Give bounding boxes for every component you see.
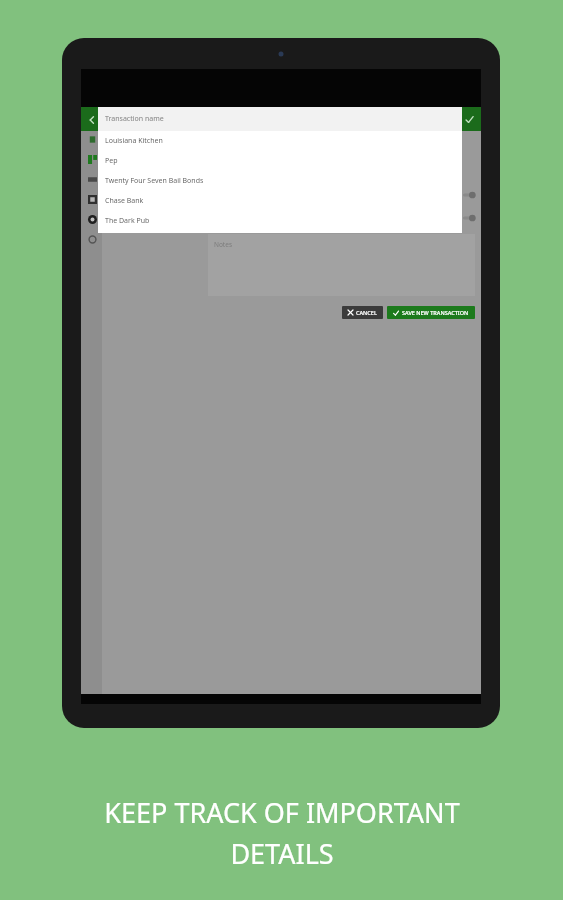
staticText: KEEP TRACK OF IMPORTANT	[104, 794, 460, 831]
button[interactable]: The Dark Pub	[98, 211, 462, 231]
button[interactable]: Rail item 1	[84, 131, 100, 147]
button[interactable]: Pep	[98, 151, 462, 171]
staticText: Louisiana Kitchen	[105, 136, 163, 146]
button[interactable]: Confirm	[457, 107, 481, 131]
button[interactable]: Rail item 2	[84, 151, 100, 167]
button[interactable]: Rail item 3	[84, 171, 100, 187]
button[interactable]: Back	[81, 109, 102, 130]
button[interactable]: Louisiana Kitchen	[98, 131, 462, 151]
button[interactable]: Rail item 6	[84, 231, 100, 247]
button[interactable]: CANCEL	[342, 306, 383, 319]
staticText: Notes	[214, 240, 232, 249]
button[interactable]: Rail item 4	[84, 191, 100, 207]
staticText: Twenty Four Seven Bail Bonds	[105, 176, 204, 186]
staticText: SAVE NEW TRANSACTION	[402, 309, 469, 316]
button[interactable]: Chase Bank	[98, 191, 462, 211]
staticText: Chase Bank	[105, 196, 144, 206]
staticText: Pep	[105, 156, 118, 166]
button[interactable]: SAVE NEW TRANSACTION	[387, 306, 475, 319]
button[interactable]: Toggle	[463, 191, 475, 199]
button[interactable]: Toggle	[463, 214, 475, 222]
staticText: DETAILS	[230, 835, 334, 872]
button[interactable]: Twenty Four Seven Bail Bonds	[98, 171, 462, 191]
button[interactable]: Transaction name	[98, 107, 462, 131]
button[interactable]: Rail item 5	[84, 211, 100, 227]
staticText: The Dark Pub	[105, 216, 150, 226]
staticText: Transaction name	[105, 114, 164, 124]
staticText: CANCEL	[356, 309, 377, 316]
